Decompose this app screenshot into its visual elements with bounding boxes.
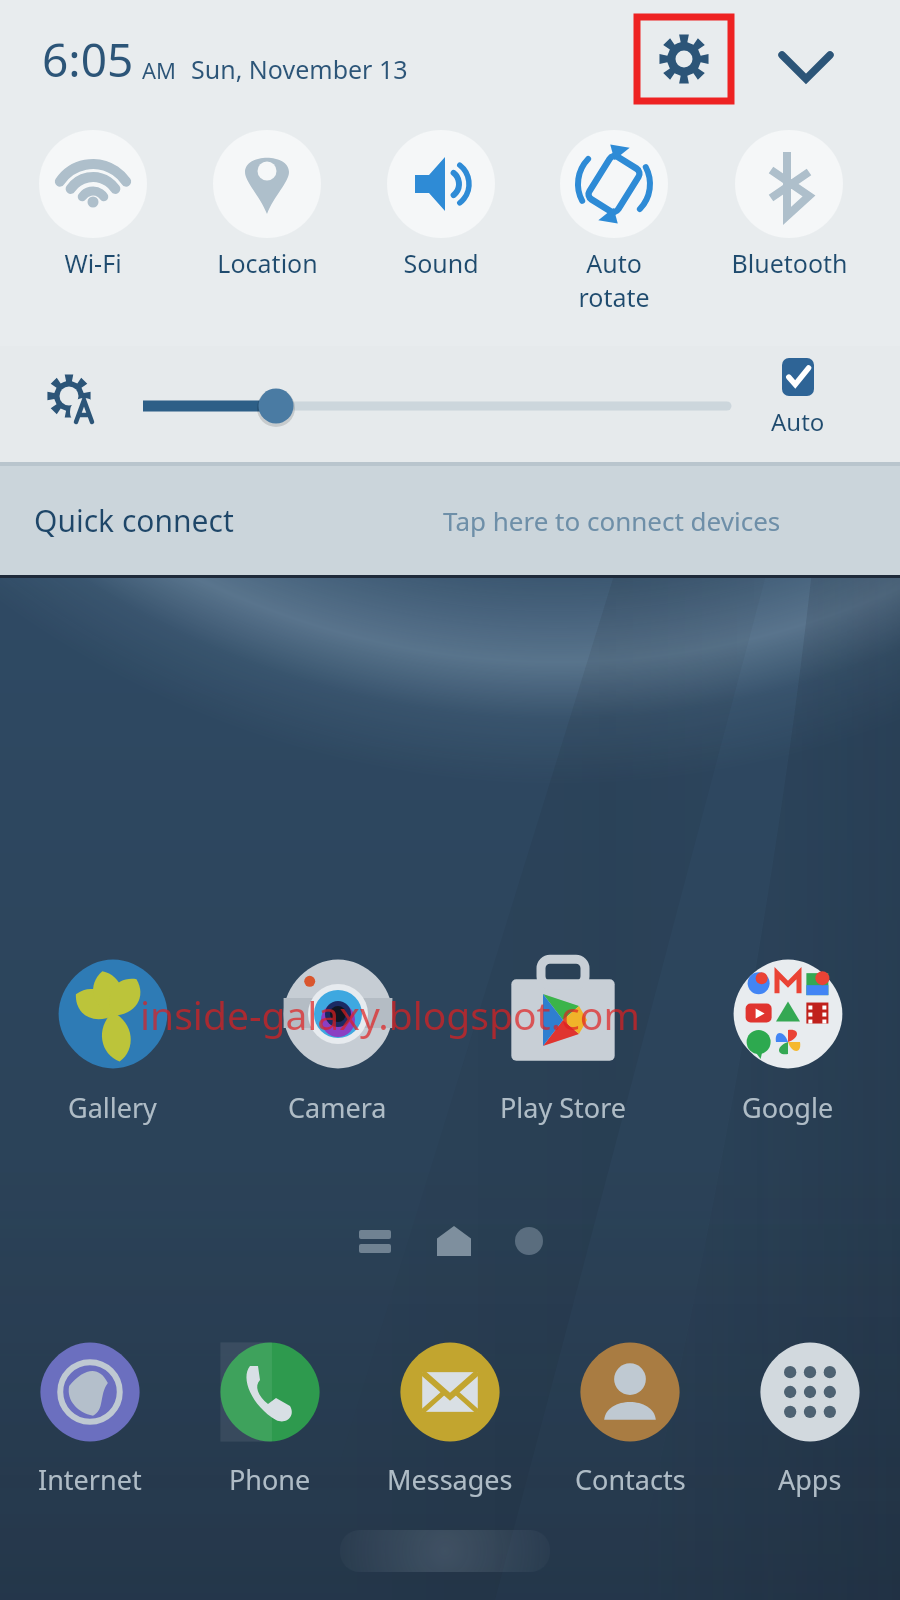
button[interactable]: Auto (748, 356, 848, 438)
staticText: Auto (771, 405, 825, 438)
button[interactable]: Internet (0, 1330, 180, 1498)
button[interactable]: Phone (180, 1330, 360, 1498)
staticText: Play Store (500, 1089, 626, 1126)
button[interactable]: Location (181, 130, 353, 280)
button[interactable]: Camera (225, 946, 450, 1126)
staticText: Gallery (68, 1089, 157, 1126)
staticText: Contacts (575, 1461, 686, 1498)
staticText: Sound (403, 246, 479, 280)
staticText: inside-galaxy.blogspot.com (140, 988, 640, 1041)
staticText: Phone (229, 1461, 311, 1498)
staticText: Apps (778, 1461, 842, 1498)
button[interactable]: Quick connect (0, 466, 900, 575)
staticText: Camera (288, 1089, 387, 1126)
staticText: 6:05 (42, 28, 134, 91)
button[interactable]: Wi-Fi (7, 130, 179, 280)
staticText: Messages (387, 1461, 513, 1498)
button[interactable]: Play Store (450, 946, 675, 1126)
button[interactable]: Sound (355, 130, 527, 280)
button[interactable]: Collapse panel (764, 22, 848, 106)
button[interactable]: Bluetooth (703, 130, 875, 280)
staticText: Sun, November 13 (191, 52, 408, 86)
staticText: Wi-Fi (64, 246, 122, 280)
button[interactable]: Settings (637, 17, 731, 101)
button[interactable]: Brightness level (143, 368, 727, 428)
button[interactable]: Apps (720, 1330, 900, 1498)
button[interactable]: Messages (360, 1330, 540, 1498)
staticText: Auto rotate (578, 246, 650, 314)
staticText: AM (142, 55, 177, 85)
button[interactable]: Google (675, 946, 900, 1126)
button[interactable]: Contacts (540, 1330, 720, 1498)
button[interactable]: Auto rotate (528, 130, 700, 314)
staticText: Bluetooth (731, 246, 848, 280)
staticText: Internet (38, 1461, 142, 1498)
staticText: Tap here to connect devices (443, 503, 781, 538)
staticText: Google (742, 1089, 834, 1126)
staticText: Quick connect (34, 500, 234, 541)
button[interactable]: Gallery (0, 946, 225, 1126)
button[interactable]: Auto brightness (36, 362, 110, 436)
staticText: Location (217, 246, 318, 280)
